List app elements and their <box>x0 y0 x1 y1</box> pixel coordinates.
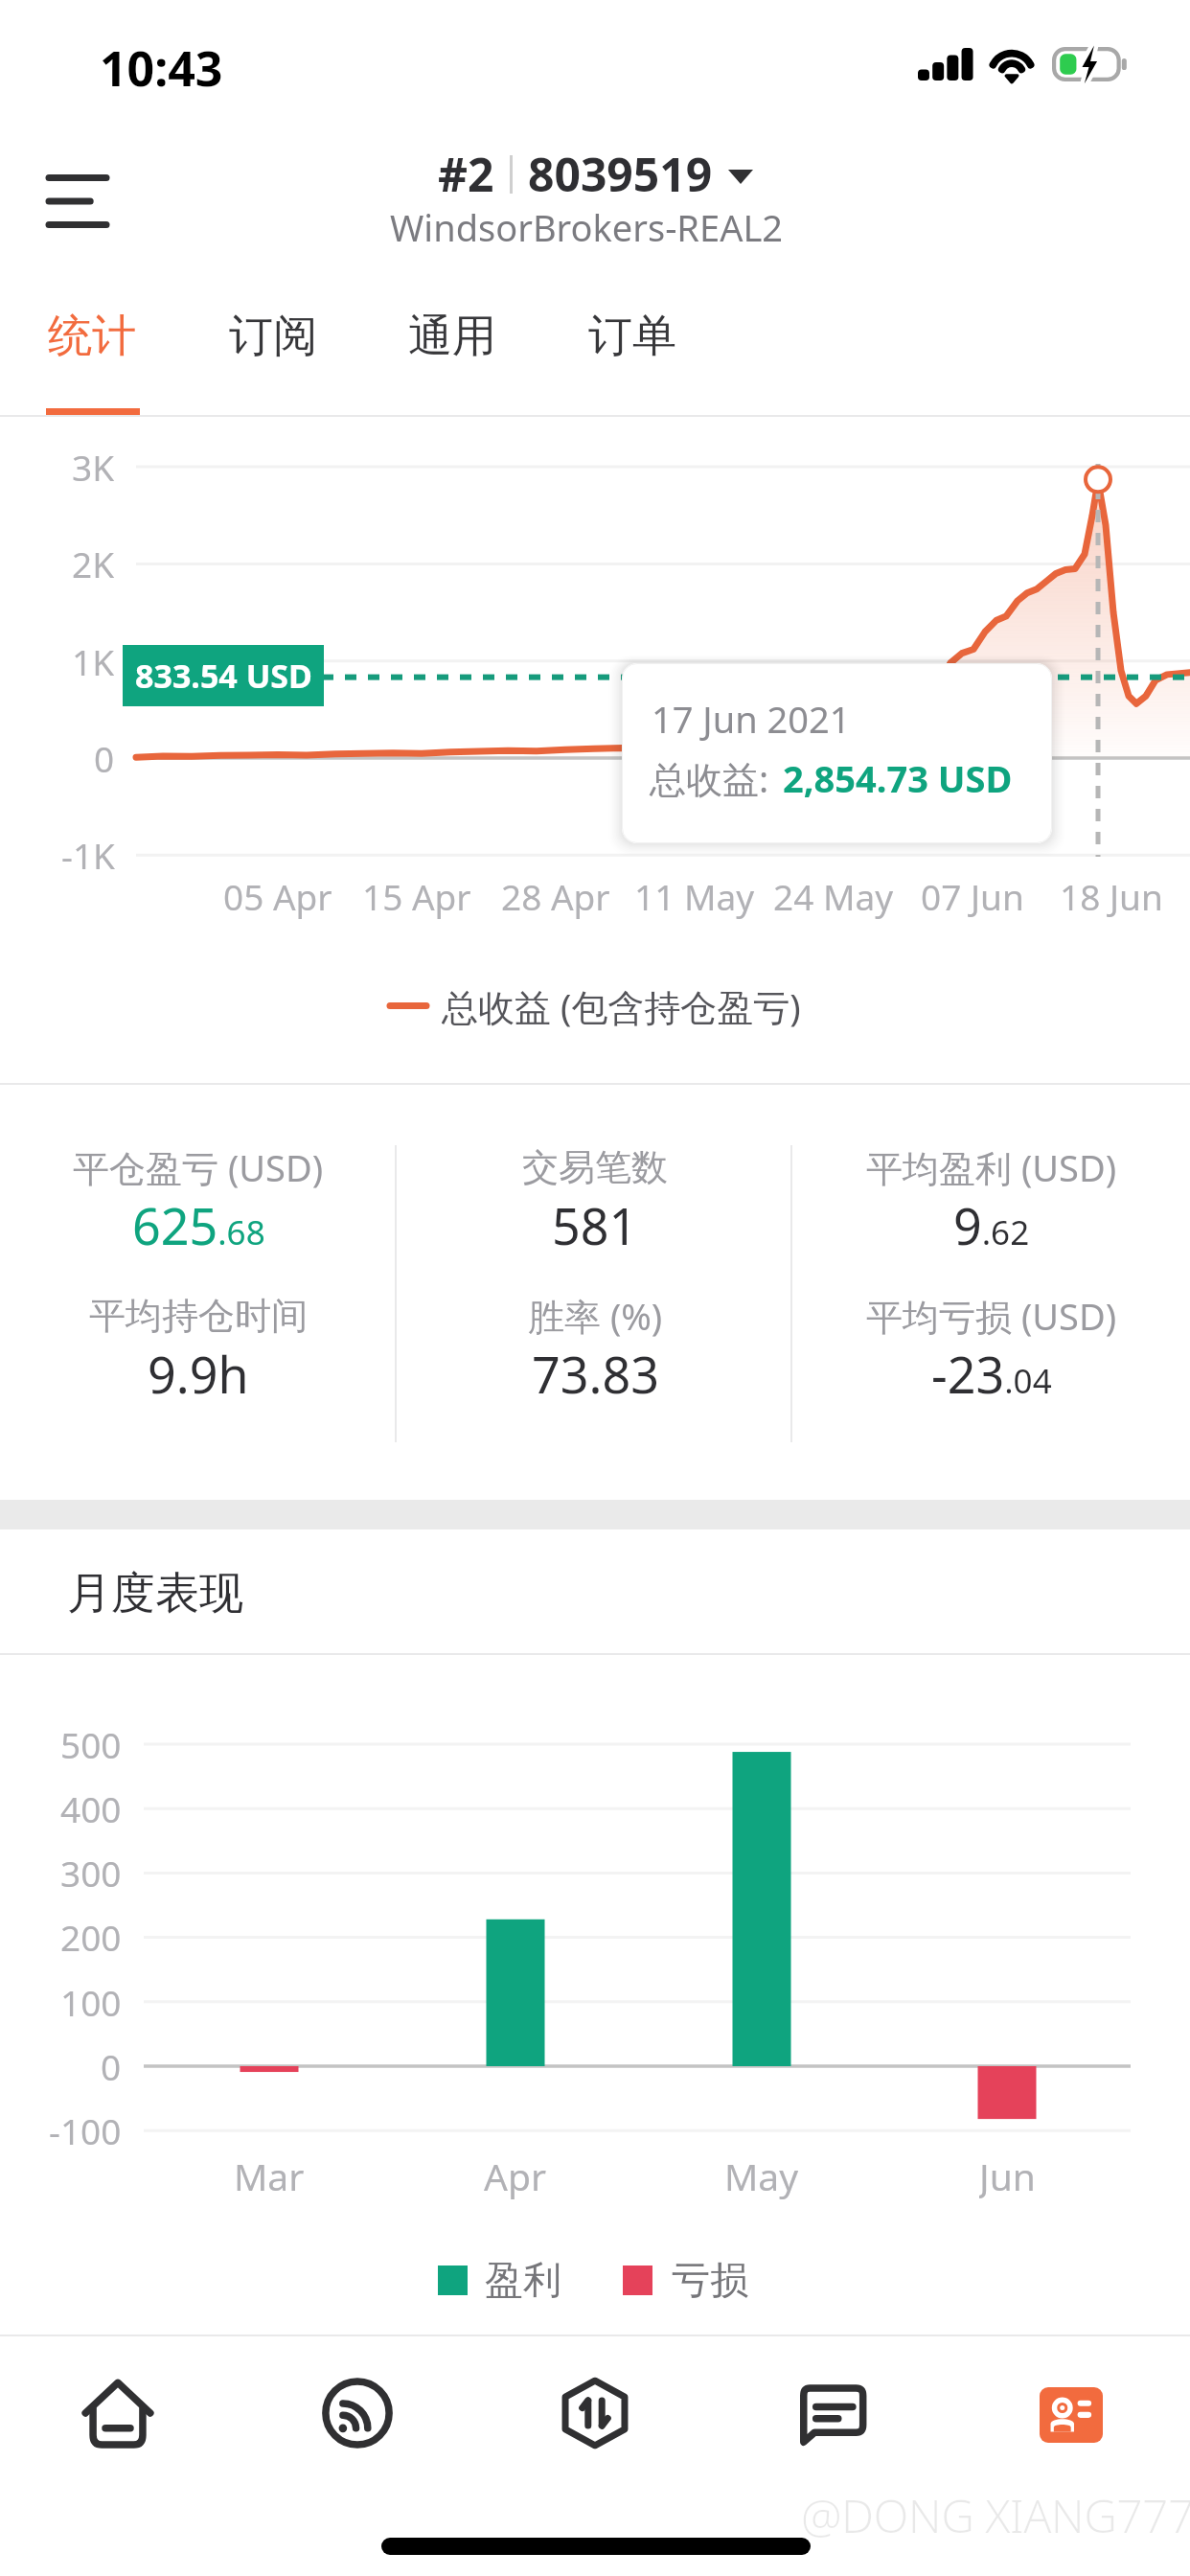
button[interactable]: Profile <box>1012 2356 1131 2474</box>
staticText: 400 <box>60 1784 122 1832</box>
staticText: May <box>724 2150 799 2200</box>
staticText: 05 Apr <box>223 872 332 920</box>
staticText: 500 <box>60 1720 122 1768</box>
staticText: @DONG XIANG777 <box>801 2484 1190 2546</box>
staticText: 交易笔数 <box>522 1144 668 1190</box>
staticText: 18 Jun <box>1060 872 1163 920</box>
staticText: 9.9h <box>148 1340 249 1403</box>
staticText: 总收益: <box>650 753 779 803</box>
staticText: 1K <box>72 637 115 685</box>
button[interactable]: 订单 <box>551 278 714 416</box>
staticText: 胜率 (%) <box>528 1291 663 1341</box>
staticText: 0 <box>101 2042 122 2090</box>
staticText: 10:43 <box>100 35 223 101</box>
button[interactable]: 通用 <box>371 278 534 416</box>
staticText: 订单 <box>588 309 676 364</box>
button[interactable]: Home <box>58 2354 177 2472</box>
staticText: -1K <box>61 831 115 879</box>
staticText: 平均持仓时间 <box>89 1293 308 1339</box>
staticText: 24 May <box>773 872 894 920</box>
staticText: Mar <box>234 2150 305 2200</box>
staticText: Jun <box>979 2150 1036 2200</box>
staticText: 2K <box>72 540 115 587</box>
staticText: 3K <box>72 443 115 491</box>
staticText: 统计 <box>48 309 136 364</box>
button[interactable]: Trade <box>536 2354 654 2472</box>
staticText: 625.68 <box>132 1191 265 1254</box>
staticText: 通用 <box>408 309 496 364</box>
staticText: 月度表现 <box>67 1566 243 1621</box>
staticText: 0 <box>94 734 115 782</box>
staticText: 833.54 USD <box>135 654 312 698</box>
staticText: 28 Apr <box>501 872 610 920</box>
button[interactable]: Messages <box>773 2354 892 2472</box>
button[interactable]: 订阅 <box>192 278 355 416</box>
staticText: #2 <box>438 143 494 205</box>
staticText: 亏损 <box>672 2256 748 2304</box>
staticText: 总收益 (包含持仓盈亏) <box>442 981 801 1029</box>
staticText: Apr <box>484 2150 547 2200</box>
staticText: WindsorBrokers-REAL2 <box>390 202 784 252</box>
button[interactable]: Feed <box>298 2354 417 2472</box>
staticText: 平均盈利 (USD) <box>866 1142 1117 1192</box>
staticText: 300 <box>60 1849 122 1897</box>
staticText: 订阅 <box>229 309 317 364</box>
staticText: 平均亏损 (USD) <box>866 1291 1117 1341</box>
staticText: 2,854.73 USD <box>783 753 1013 803</box>
staticText: -100 <box>49 2106 122 2154</box>
staticText: 100 <box>60 1978 122 2026</box>
staticText: 581 <box>552 1191 638 1254</box>
button[interactable]: 统计 <box>11 278 173 416</box>
staticText: 9.62 <box>953 1191 1030 1254</box>
staticText: 17 Jun 2021 <box>652 694 851 744</box>
staticText: 盈利 <box>485 2256 561 2304</box>
staticText: 200 <box>60 1913 122 1961</box>
button[interactable]: Menu <box>25 149 130 254</box>
staticText: 8039519 <box>528 143 713 205</box>
staticText: 平仓盈亏 (USD) <box>73 1142 324 1192</box>
staticText: -23.04 <box>931 1340 1052 1403</box>
staticText: 73.83 <box>532 1340 659 1403</box>
staticText: 07 Jun <box>921 872 1024 920</box>
staticText: 11 May <box>634 872 755 920</box>
staticText: 15 Apr <box>362 872 471 920</box>
